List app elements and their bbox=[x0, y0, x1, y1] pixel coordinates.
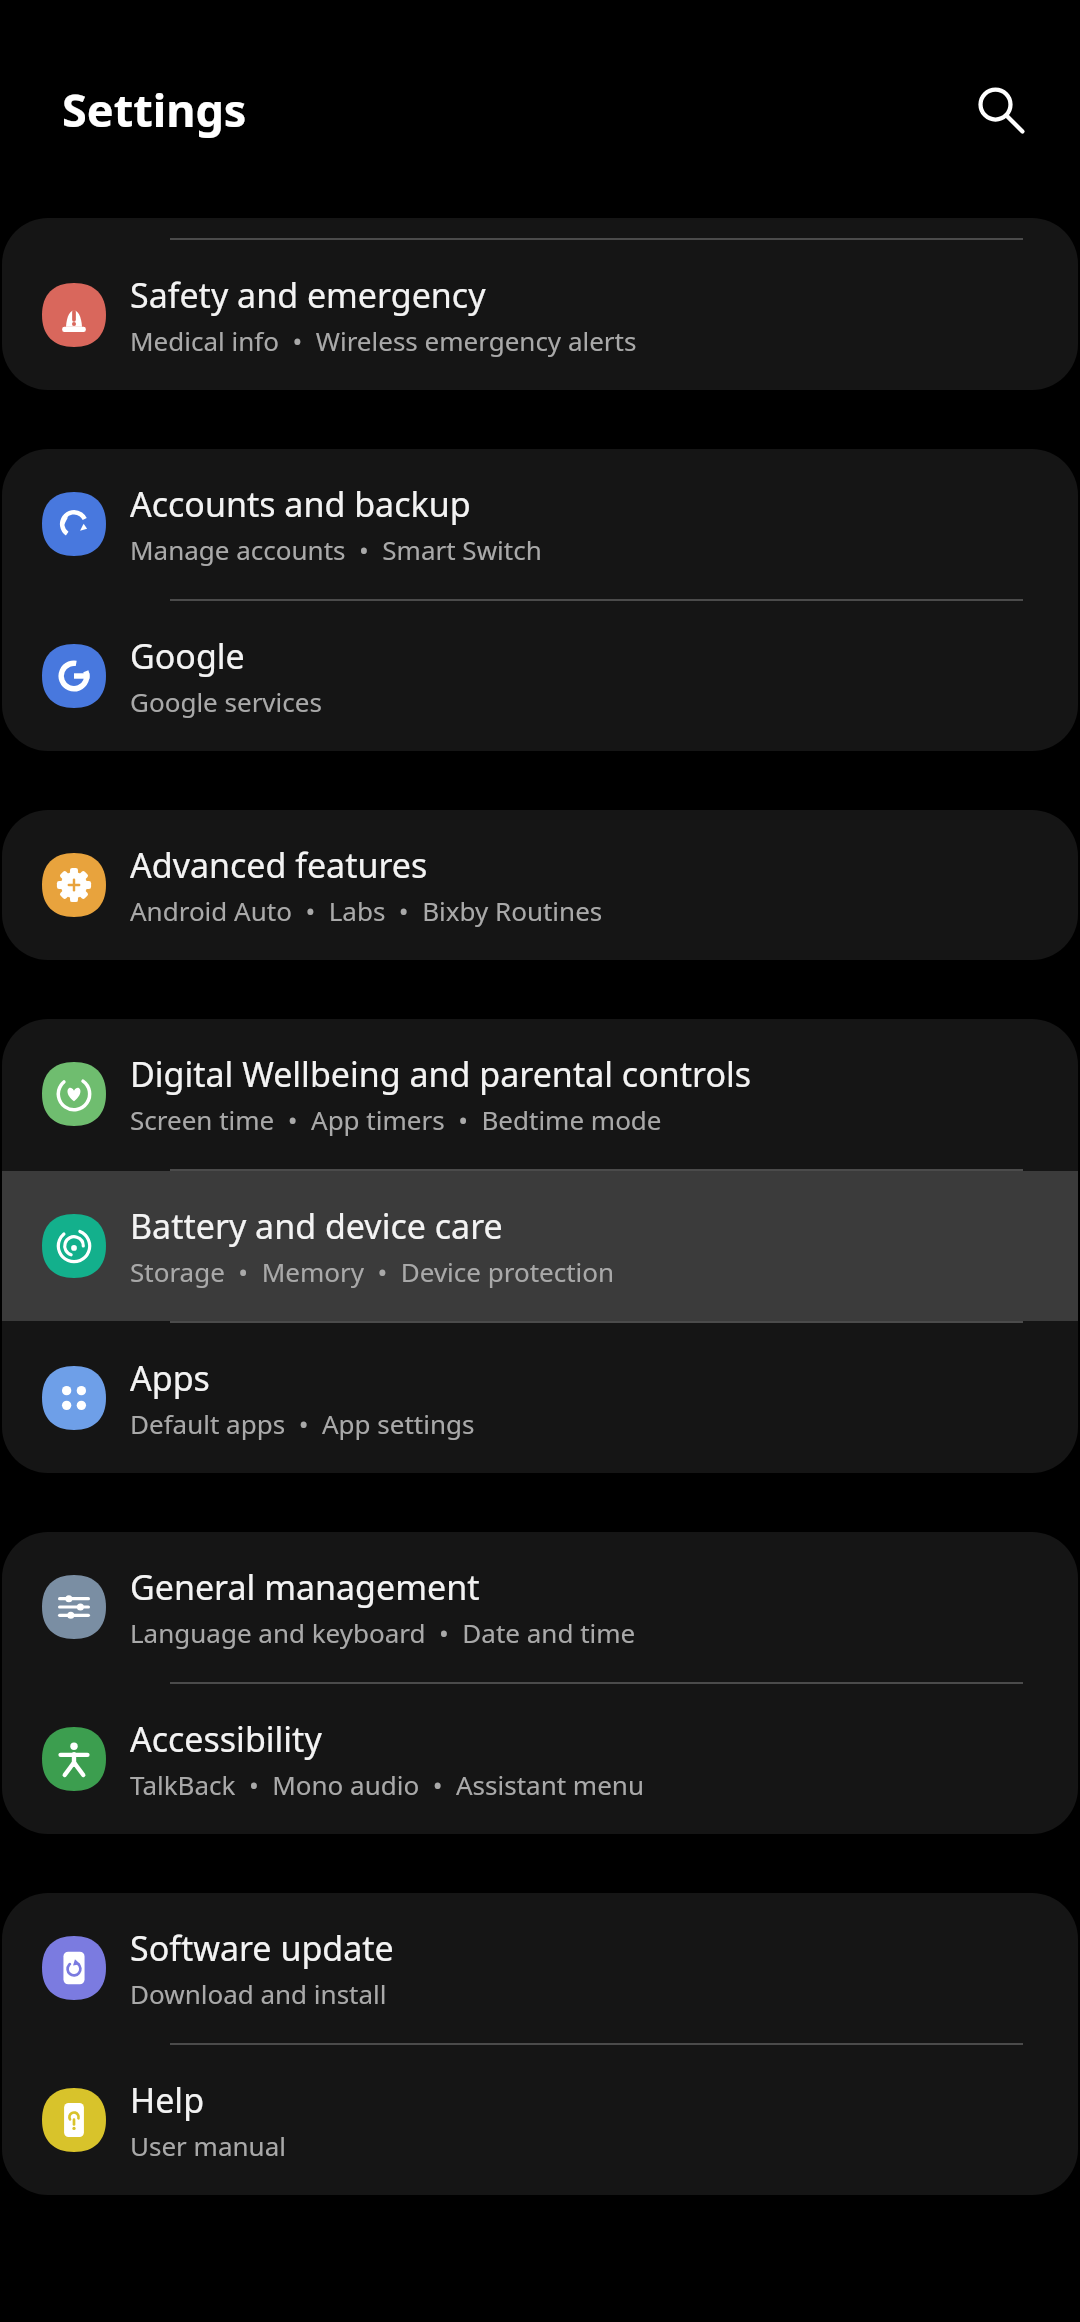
staticText: Medical info • Wireless emergency alerts bbox=[130, 323, 637, 358]
button[interactable]: Digital Wellbeing and parental controls bbox=[2, 1019, 1078, 1169]
staticText: Android Auto • Labs • Bixby Routines bbox=[130, 893, 603, 928]
button[interactable]: Accounts and backup bbox=[2, 449, 1078, 599]
button[interactable]: Google bbox=[2, 601, 1078, 751]
staticText: General management bbox=[130, 1564, 480, 1610]
button[interactable]: Software update bbox=[2, 1893, 1078, 2043]
staticText: Apps bbox=[130, 1355, 210, 1401]
button[interactable]: Advanced features bbox=[2, 810, 1078, 960]
staticText: Manage accounts • Smart Switch bbox=[130, 532, 542, 567]
staticText: Download and install bbox=[130, 1976, 387, 2011]
staticText: User manual bbox=[130, 2128, 286, 2163]
button[interactable]: Safety and emergency bbox=[2, 240, 1078, 390]
staticText: Language and keyboard • Date and time bbox=[130, 1615, 636, 1650]
staticText: Screen time • App timers • Bedtime mode bbox=[130, 1102, 662, 1137]
staticText: Default apps • App settings bbox=[130, 1406, 475, 1441]
button[interactable]: Apps bbox=[2, 1323, 1078, 1473]
button[interactable]: Help bbox=[2, 2045, 1078, 2195]
staticText: Accessibility bbox=[130, 1716, 322, 1762]
button[interactable]: General management bbox=[2, 1532, 1078, 1682]
button[interactable]: Battery and device care bbox=[2, 1171, 1078, 1321]
staticText: Advanced features bbox=[130, 842, 428, 888]
staticText: Battery and device care bbox=[130, 1203, 503, 1249]
button[interactable]: Accessibility bbox=[2, 1684, 1078, 1834]
staticText: Storage • Memory • Device protection bbox=[130, 1254, 615, 1289]
staticText: Google services bbox=[130, 684, 322, 719]
staticText: Help bbox=[130, 2077, 205, 2123]
staticText: TalkBack • Mono audio • Assistant menu bbox=[130, 1767, 644, 1802]
staticText: Accounts and backup bbox=[130, 481, 471, 527]
staticText: Digital Wellbeing and parental controls bbox=[130, 1051, 752, 1097]
staticText: Google bbox=[130, 633, 245, 679]
staticText: Software update bbox=[130, 1925, 394, 1971]
staticText: Settings bbox=[62, 79, 247, 140]
staticText: Safety and emergency bbox=[130, 272, 486, 318]
button[interactable]: Search bbox=[962, 71, 1038, 147]
